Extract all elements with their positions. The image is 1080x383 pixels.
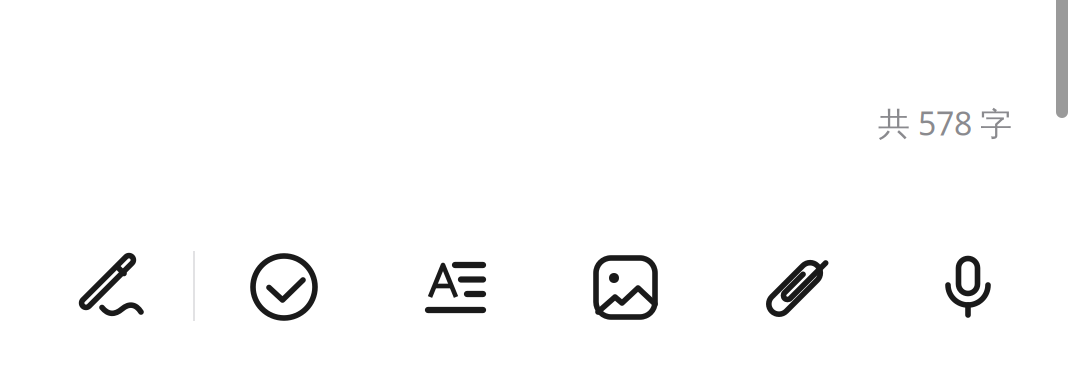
button[interactable]: Record audio	[882, 252, 1054, 322]
staticText: 共 578 字	[878, 102, 1012, 144]
button[interactable]: Photo	[542, 252, 710, 322]
button[interactable]: Markup	[26, 252, 198, 322]
button[interactable]: Format	[370, 252, 542, 322]
button[interactable]: Attach file	[710, 252, 882, 322]
button[interactable]: Checklist	[198, 252, 370, 322]
